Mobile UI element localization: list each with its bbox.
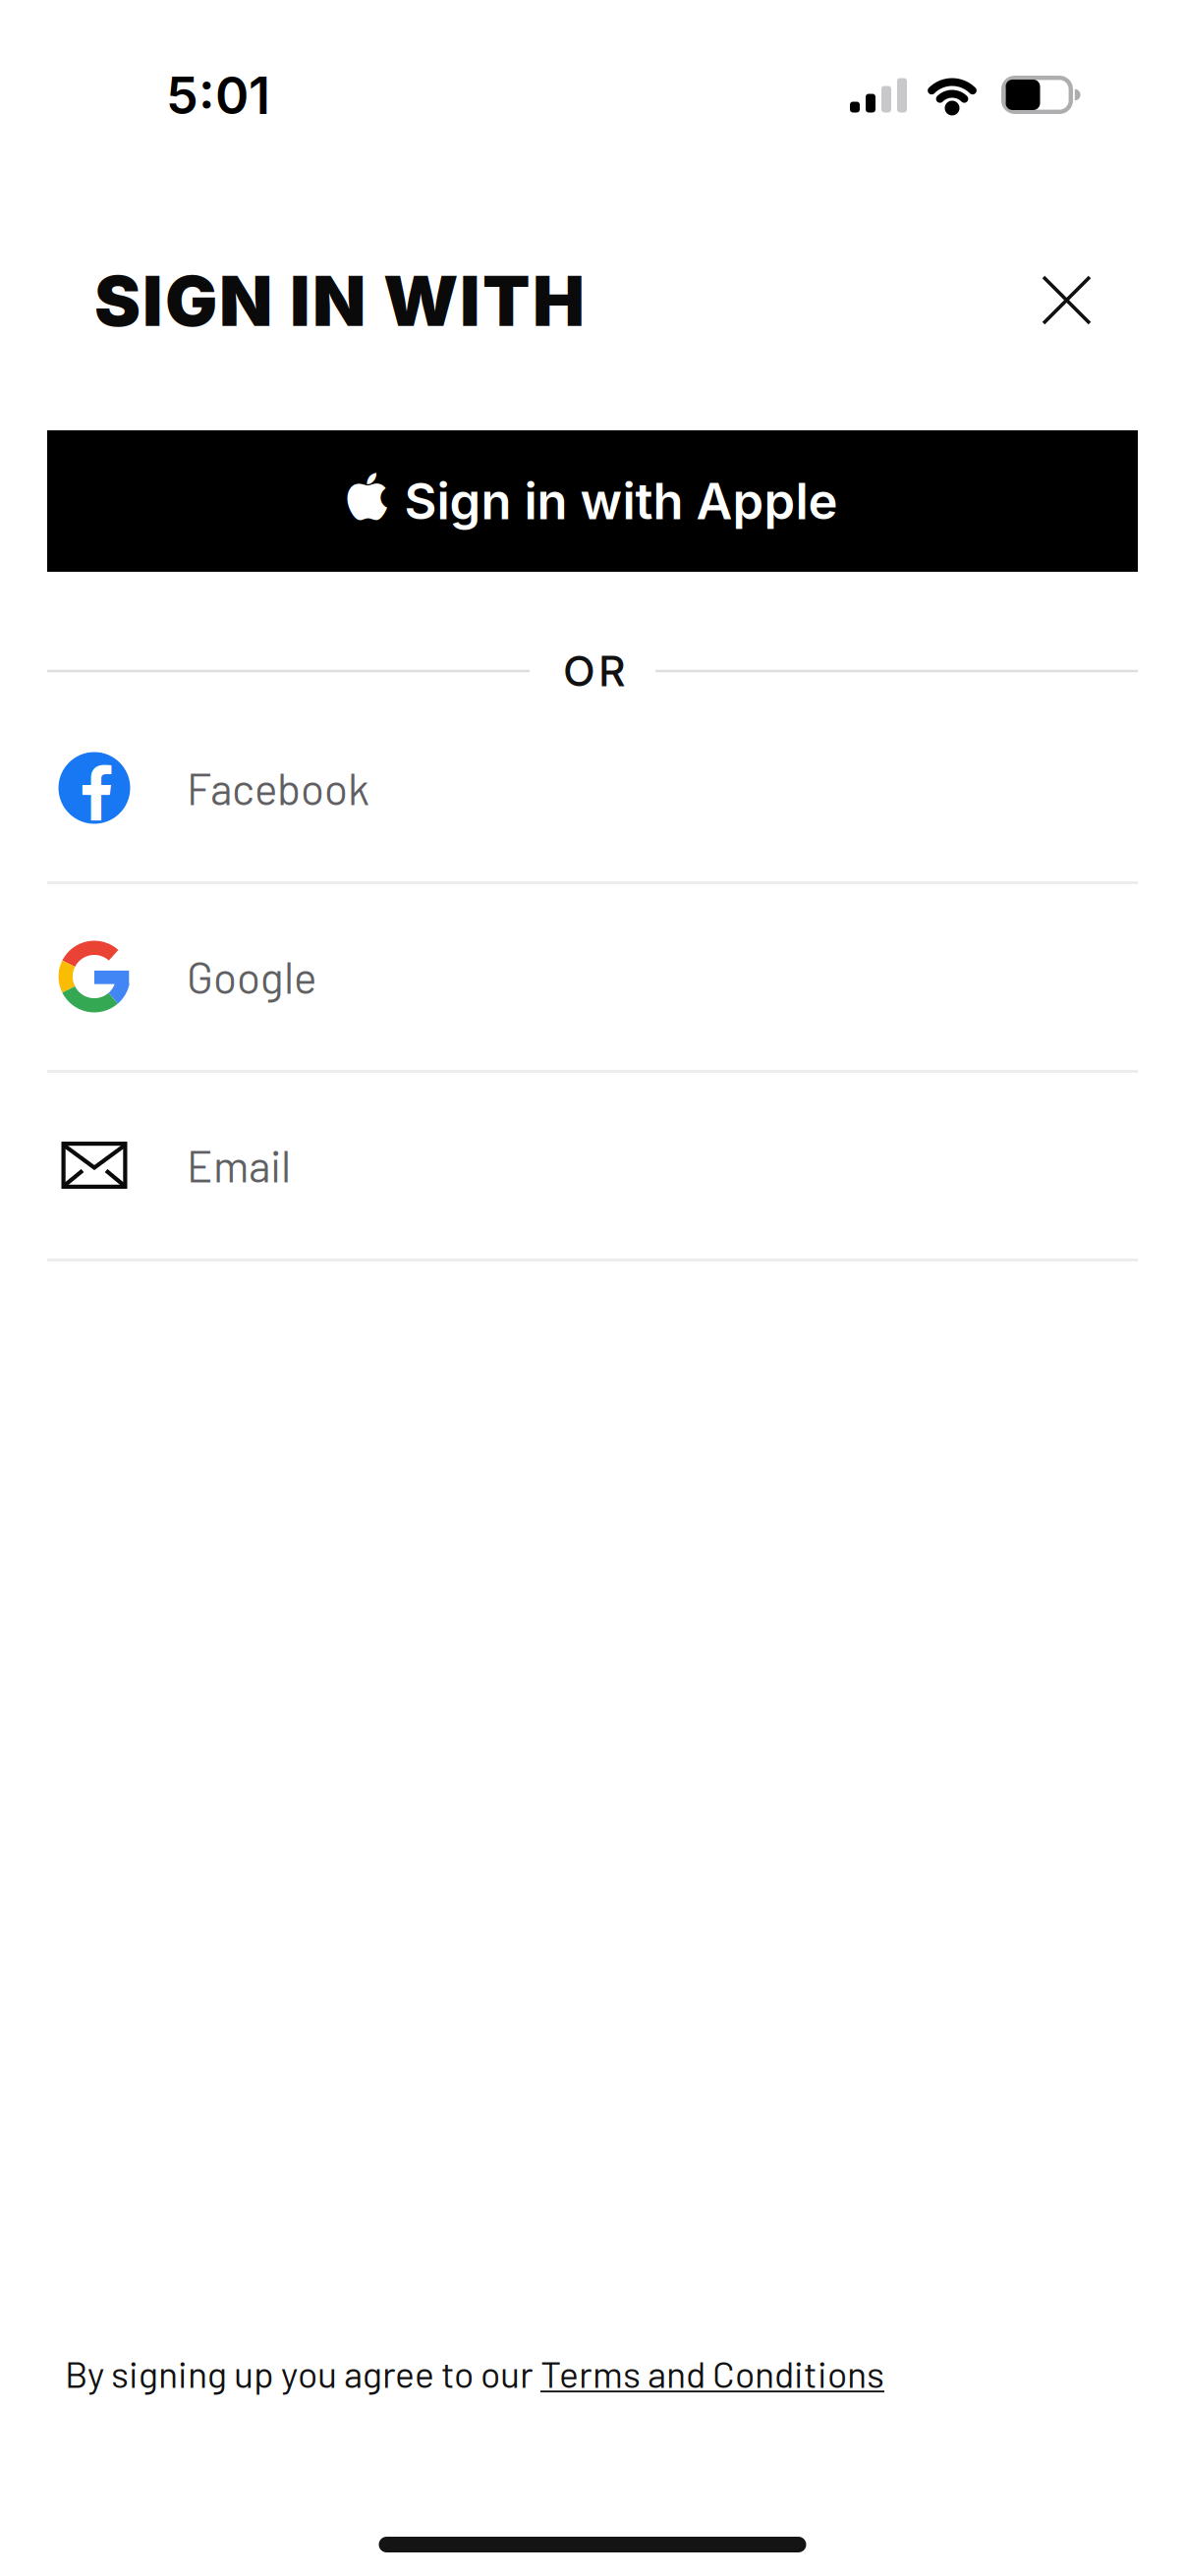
staticText: Sign in with Apple (404, 471, 838, 531)
staticText:  (79, 765, 113, 825)
button[interactable]:  (47, 430, 1138, 572)
staticText: SIGN IN WITH (94, 259, 585, 343)
staticText: Facebook (187, 762, 369, 814)
staticText: Terms and Conditions (540, 2351, 884, 2395)
staticText: OR (563, 646, 626, 696)
button[interactable]: Close (1044, 277, 1090, 323)
staticText: By signing up you agree to our (65, 2351, 540, 2395)
staticText: Google (187, 951, 316, 1002)
button[interactable]: Email (47, 1072, 1138, 1258)
staticText:  (347, 473, 388, 524)
staticText: Email (187, 1139, 291, 1191)
staticText: 5:01 (166, 64, 270, 126)
button[interactable]: Terms and Conditions (540, 2351, 884, 2395)
button[interactable]: Google (47, 884, 1138, 1069)
button[interactable]:  (47, 695, 1138, 881)
